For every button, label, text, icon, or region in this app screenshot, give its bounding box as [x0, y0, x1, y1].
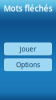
staticText: Mots fléchés — [3, 3, 52, 14]
button[interactable]: Options — [4, 58, 52, 71]
staticText: Jouer — [19, 44, 36, 53]
staticText: Options — [16, 60, 40, 69]
button[interactable]: Jouer — [4, 42, 52, 55]
